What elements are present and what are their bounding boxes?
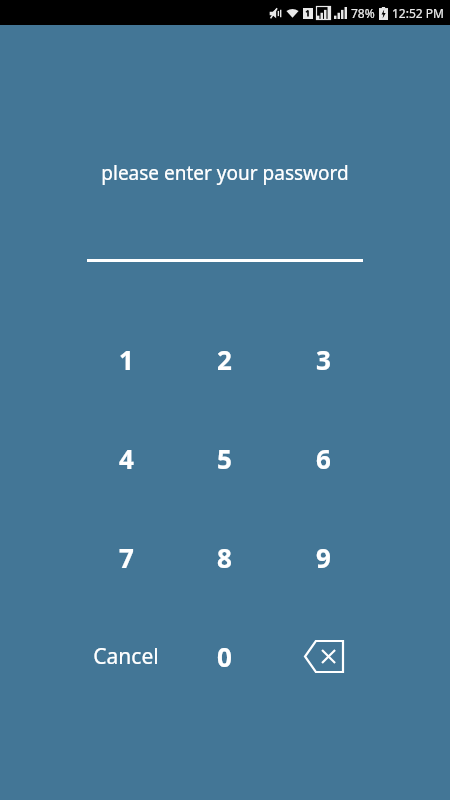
staticText: 2: [217, 342, 232, 377]
button[interactable]: 6: [274, 409, 373, 508]
staticText: 9: [316, 540, 331, 575]
staticText: 12:52 PM: [392, 5, 444, 21]
button[interactable]: Cancel: [77, 607, 175, 706]
button[interactable]: Backspace: [274, 607, 373, 706]
staticText: 6: [316, 441, 331, 476]
staticText: 7: [119, 540, 134, 575]
button[interactable]: 1: [77, 310, 175, 409]
staticText: 1: [119, 342, 134, 377]
button[interactable]: 8: [175, 508, 274, 607]
button[interactable]: 3: [274, 310, 373, 409]
button[interactable]: 2: [175, 310, 274, 409]
staticText: Cancel: [93, 642, 159, 671]
staticText: 0: [217, 639, 232, 674]
staticText: 78%: [351, 5, 375, 21]
button[interactable]: 4: [77, 409, 175, 508]
staticText: 8: [217, 540, 232, 575]
staticText: 3: [316, 342, 331, 377]
button[interactable]: 9: [274, 508, 373, 607]
staticText: 4: [119, 441, 134, 476]
button[interactable]: 0: [175, 607, 274, 706]
staticText: please enter your password: [0, 160, 450, 186]
staticText: 5: [217, 441, 232, 476]
button[interactable]: 7: [77, 508, 175, 607]
button[interactable]: 5: [175, 409, 274, 508]
